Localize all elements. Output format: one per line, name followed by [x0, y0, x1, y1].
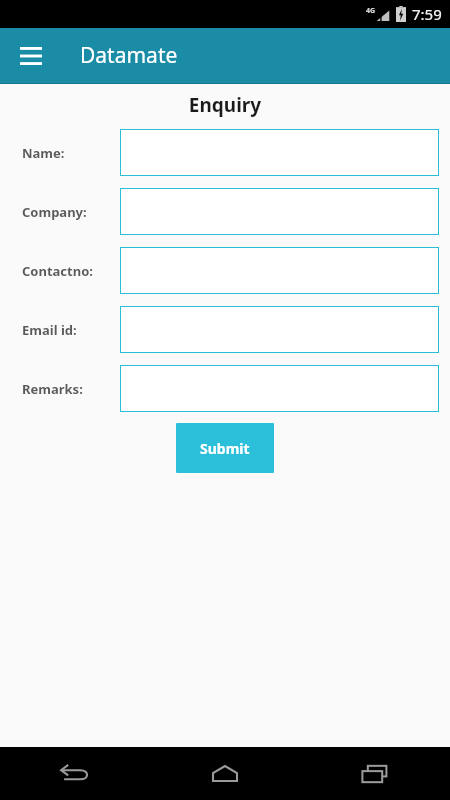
- button[interactable]: Recent apps: [300, 747, 450, 800]
- button[interactable]: Open navigation menu: [14, 39, 48, 73]
- staticText: Name:: [22, 144, 65, 162]
- staticText: Submit: [200, 439, 250, 458]
- button[interactable]: Email id:: [120, 306, 439, 353]
- staticText: Remarks:: [22, 380, 83, 398]
- staticText: Contactno:: [22, 262, 93, 280]
- button[interactable]: Company:: [120, 188, 439, 235]
- button[interactable]: Contactno:: [120, 247, 439, 294]
- staticText: Company:: [22, 203, 87, 221]
- button[interactable]: Remarks:: [120, 365, 439, 412]
- staticText: Datamate: [80, 41, 178, 70]
- button[interactable]: Submit: [176, 423, 274, 473]
- staticText: Enquiry: [0, 92, 450, 118]
- staticText: 4G: [366, 6, 376, 16]
- button[interactable]: Home: [150, 747, 300, 800]
- button[interactable]: Name:: [120, 129, 439, 176]
- button[interactable]: Back: [0, 747, 150, 800]
- staticText: 7:59: [412, 4, 442, 24]
- staticText: Email id:: [22, 321, 77, 339]
